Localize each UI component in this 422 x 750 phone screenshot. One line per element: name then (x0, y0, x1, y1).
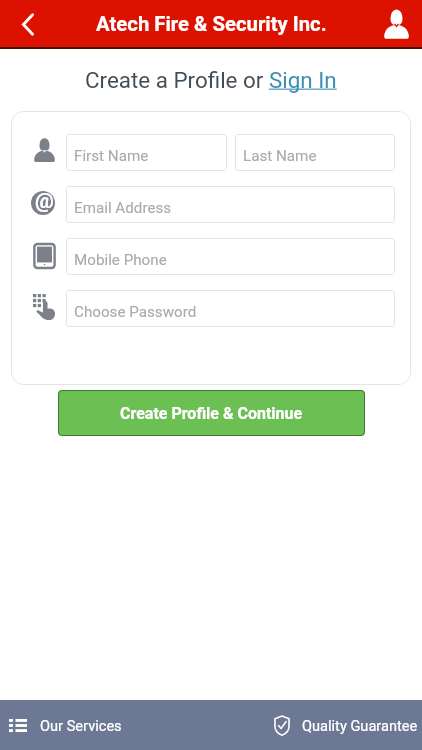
staticText: First Name (74, 147, 149, 165)
button[interactable]: Choose Password (66, 290, 395, 327)
staticText: Atech Fire & Security Inc. (96, 12, 327, 36)
button[interactable]: Mobile Phone (66, 238, 395, 275)
staticText: Quality Guarantee (302, 717, 418, 734)
button[interactable]: Sign In (269, 67, 337, 93)
button[interactable]: First Name (66, 134, 227, 171)
staticText: Email Address (74, 199, 172, 217)
button[interactable]: Account (374, 0, 422, 47)
button[interactable]: Our Services (0, 700, 264, 750)
staticText: Choose Password (74, 303, 197, 321)
staticText: Our Services (40, 717, 122, 734)
staticText: Sign In (269, 67, 337, 93)
staticText: Last Name (243, 147, 317, 165)
button[interactable]: Create Profile & Continue (58, 390, 365, 436)
staticText: Mobile Phone (74, 251, 167, 269)
button[interactable]: Back (0, 0, 48, 47)
button[interactable]: Last Name (235, 134, 395, 171)
button[interactable]: Email Address (66, 186, 395, 223)
staticText: @ (35, 191, 54, 213)
staticText: Create Profile & Continue (120, 404, 303, 423)
staticText: Create a Profile or (85, 67, 269, 93)
button[interactable]: Quality Guarantee (264, 700, 422, 750)
